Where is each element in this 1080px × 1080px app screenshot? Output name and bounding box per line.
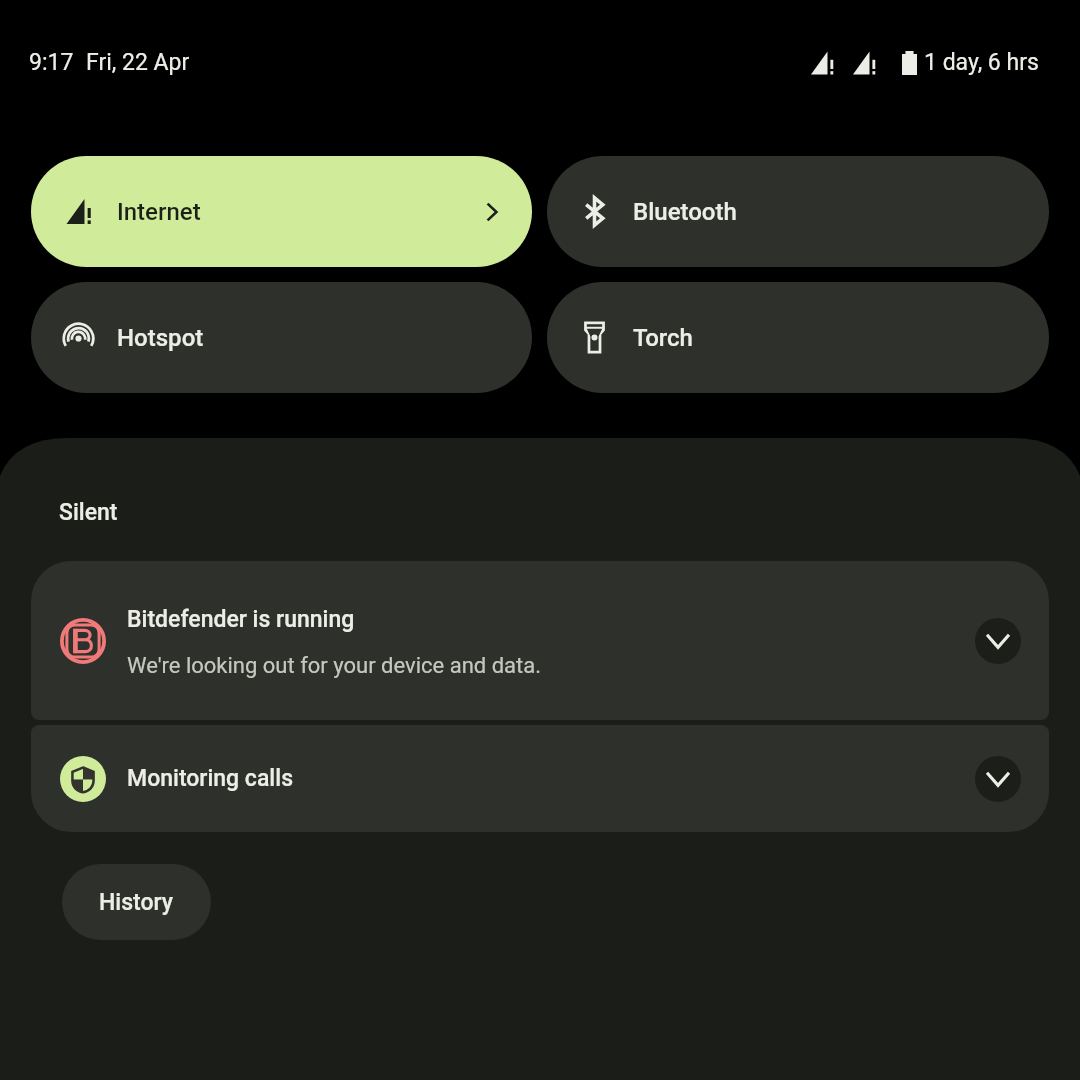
button[interactable]: Expand notification [975,756,1021,802]
staticText: Internet [117,198,477,226]
button[interactable]: Torch [547,282,1049,393]
staticText: Monitoring calls [127,765,975,792]
staticText: 9:17 [29,49,74,76]
staticText: History [99,889,174,916]
staticText: We're looking out for your device and da… [127,653,541,679]
staticText: Bluetooth [633,198,1024,226]
staticText: Hotspot [117,324,507,352]
staticText: Fri, 22 Apr [86,49,190,76]
button[interactable]: Bluetooth [547,156,1049,267]
staticText: 1 day, 6 hrs [924,49,1039,76]
button[interactable]: Expand notification [975,618,1021,664]
button[interactable]: Monitoring calls [31,725,1049,832]
staticText: Silent [59,499,118,526]
button[interactable]: Hotspot [31,282,532,393]
button[interactable]: Internet [31,156,532,267]
staticText: Torch [633,324,1024,352]
button[interactable]: History [62,864,211,940]
staticText: Bitdefender is running [127,606,355,633]
button[interactable]: Bitdefender is running [31,561,1049,720]
